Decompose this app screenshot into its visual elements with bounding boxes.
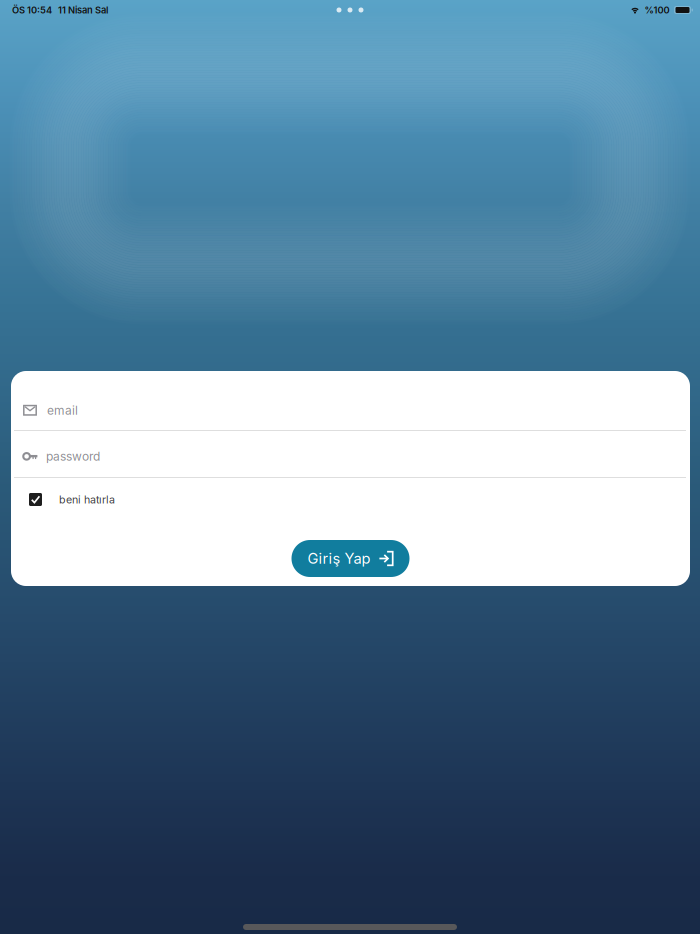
staticText: %100	[644, 4, 669, 16]
staticText: password	[46, 449, 100, 463]
staticText: email	[47, 403, 78, 417]
staticText: ÖS 10:54	[12, 4, 52, 16]
button[interactable]: password	[11, 431, 690, 477]
staticText: 11 Nisan Sal	[58, 4, 108, 16]
button[interactable]: Giriş Yap	[291, 540, 409, 577]
staticText: Giriş Yap	[307, 550, 370, 567]
staticText: beni hatırla	[59, 493, 115, 506]
button[interactable]: email	[11, 371, 690, 430]
button[interactable]: beni hatırla	[11, 478, 690, 521]
